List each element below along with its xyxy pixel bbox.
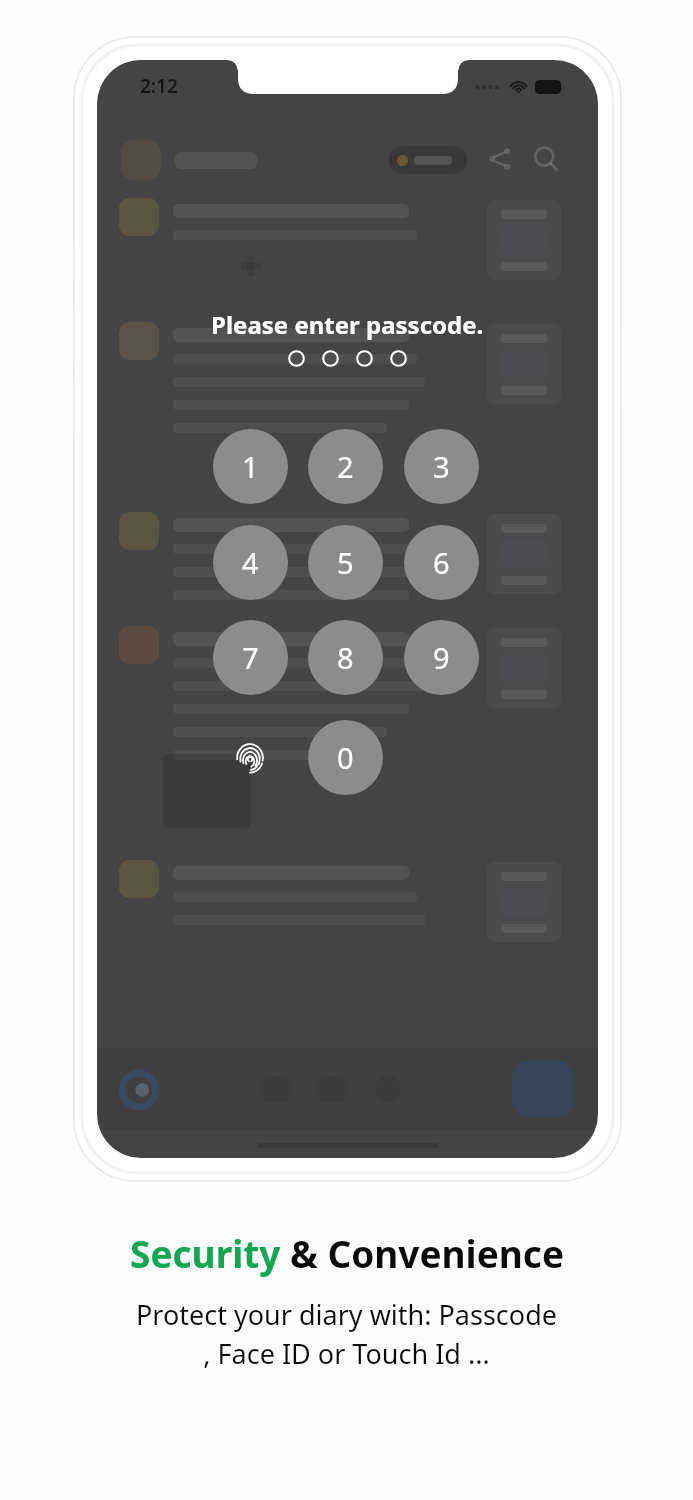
- staticText: 2: [337, 447, 354, 486]
- button[interactable]: 4: [213, 525, 288, 600]
- button[interactable]: 5: [308, 525, 383, 600]
- button[interactable]: 3: [404, 429, 479, 504]
- staticText: Security & Convenience: [130, 1228, 564, 1278]
- staticText: 8: [337, 638, 354, 677]
- button[interactable]: 8: [308, 620, 383, 695]
- staticText: 9: [433, 638, 450, 677]
- button[interactable]: Unlock with fingerprint: [228, 735, 272, 779]
- staticText: 5: [337, 543, 354, 582]
- staticText: 6: [433, 543, 450, 582]
- staticText: 2:12: [140, 73, 178, 99]
- staticText: 4: [242, 543, 259, 582]
- button[interactable]: 9: [404, 620, 479, 695]
- button[interactable]: 1: [213, 429, 288, 504]
- staticText: 7: [242, 638, 259, 677]
- staticText: 3: [433, 447, 450, 486]
- staticText: 0: [337, 738, 354, 777]
- staticText: 1: [242, 447, 259, 486]
- button[interactable]: 2: [308, 429, 383, 504]
- button[interactable]: 6: [404, 525, 479, 600]
- staticText: Protect your diary with: Passcode , Face…: [136, 1296, 557, 1372]
- button[interactable]: 7: [213, 620, 288, 695]
- button[interactable]: 0: [308, 720, 383, 795]
- staticText: Please enter passcode.: [211, 308, 484, 341]
